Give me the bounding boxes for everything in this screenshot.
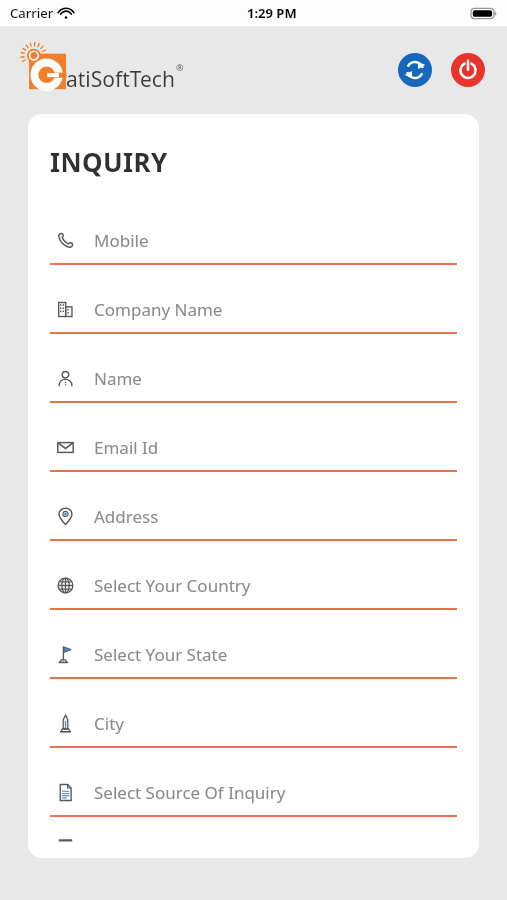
button[interactable]: Select Source Of Inquiry (50, 769, 457, 817)
button[interactable]: Select Your State (50, 631, 457, 679)
staticText: Carrier (10, 4, 54, 22)
staticText: Select Your Country (94, 574, 251, 597)
button[interactable]: Refresh (398, 53, 432, 87)
staticText: 1:29 PM (247, 4, 297, 22)
button[interactable]: Name (50, 355, 457, 403)
button[interactable]: Mobile (50, 217, 457, 265)
staticText: City (94, 712, 124, 735)
staticText: Mobile (94, 229, 149, 252)
button[interactable]: Log out (451, 53, 485, 87)
staticText: Address (94, 505, 159, 528)
staticText: Select Your State (94, 643, 228, 666)
staticText: Company Name (94, 298, 223, 321)
button[interactable]: Email Id (50, 424, 457, 472)
staticText: Select Source Of Inquiry (94, 781, 286, 804)
staticText: atiSoftTech (66, 65, 175, 94)
button[interactable]: atiSoftTech (22, 46, 183, 94)
button[interactable]: Company Name (50, 286, 457, 334)
staticText: Name (94, 367, 142, 390)
button[interactable]: Select Your Country (50, 562, 457, 610)
staticText: ® (176, 61, 184, 73)
staticText: INQUIRY (50, 144, 168, 179)
staticText: Email Id (94, 436, 159, 459)
button[interactable]: Address (50, 493, 457, 541)
button[interactable] (50, 838, 457, 858)
button[interactable]: City (50, 700, 457, 748)
